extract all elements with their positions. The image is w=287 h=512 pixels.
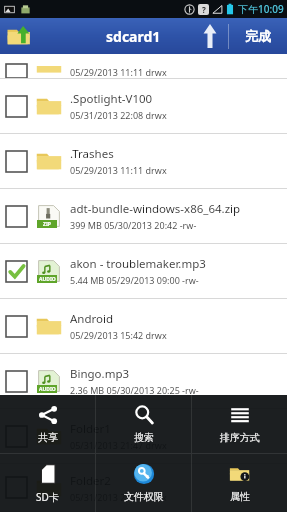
staticText: 共享 [38, 431, 58, 444]
staticText: 05/31/2013 21:47 drwx [70, 491, 167, 503]
button[interactable]: 属性 [229, 454, 251, 512]
staticText: .Trashes [70, 146, 114, 162]
staticText: Bingo.mp3 [70, 366, 130, 382]
button[interactable] [6, 371, 27, 392]
button[interactable]: 搜索 [133, 395, 155, 453]
staticText: ? [202, 4, 206, 15]
staticText: .Spotlight-V100 [70, 91, 153, 107]
staticText: Folder2 [70, 473, 111, 489]
staticText: 5.44 MB 05/29/2013 09:00 -rw- [70, 274, 199, 286]
staticText: 完成 [245, 28, 271, 44]
button[interactable]: Folder2 [0, 464, 287, 512]
staticText: AUDIO [39, 276, 56, 283]
staticText: 05/29/2013 11:11 drwx [70, 66, 167, 78]
button[interactable] [6, 426, 27, 447]
staticText: 下午10:09 [238, 2, 284, 16]
staticText: 属性 [230, 490, 250, 503]
staticText: 05/31/2013 22:08 drwx [70, 109, 167, 121]
button[interactable]: .Spotlight-V100 [0, 79, 287, 134]
staticText: akon - troublemaker.mp3 [70, 256, 206, 272]
button[interactable] [6, 316, 27, 337]
staticText: 05/29/2013 15:42 drwx [70, 329, 167, 341]
button[interactable]: Up one level [4, 20, 36, 52]
button[interactable]: Android [0, 299, 287, 354]
button[interactable] [6, 206, 27, 227]
button[interactable] [6, 96, 27, 117]
staticText: 05/31/2013 21:47 drwx [70, 439, 167, 451]
button[interactable]: Folder1 [0, 409, 287, 464]
button[interactable]: SD卡 [36, 454, 59, 512]
staticText: adt-bundle-windows-x86_64.zip [70, 201, 241, 217]
staticText: 399 MB 05/30/2013 20:42 -rw- [70, 219, 197, 231]
button[interactable]: 05/29/2013 11:11 drwx [0, 54, 287, 79]
staticText: 搜索 [134, 431, 154, 444]
staticText: AUDIO [39, 386, 56, 393]
button[interactable]: .Trashes [0, 134, 287, 189]
button[interactable]: ZIP [0, 189, 287, 244]
button[interactable]: 排序方式 [220, 395, 260, 453]
staticText: 排序方式 [220, 431, 260, 444]
staticText: Android [70, 311, 114, 327]
button[interactable]: Go up [192, 18, 228, 54]
button[interactable] [6, 261, 27, 282]
staticText: sdcard1 [106, 27, 161, 46]
button[interactable]: 完成 [229, 18, 287, 54]
button[interactable]: 文件权限 [124, 454, 164, 512]
button[interactable]: 共享 [37, 395, 59, 453]
staticText: SD卡 [36, 490, 59, 504]
staticText: 文件权限 [124, 490, 164, 503]
staticText: 05/29/2013 11:11 drwx [70, 164, 167, 176]
button[interactable] [6, 477, 27, 498]
staticText: Folder1 [70, 421, 111, 437]
staticText: 2.36 MB 05/30/2013 20:25 -rw- [70, 384, 199, 396]
button[interactable]: AUDIO [0, 354, 287, 409]
button[interactable] [6, 151, 27, 172]
staticText: ZIP [43, 221, 51, 228]
button[interactable]: AUDIO [0, 244, 287, 299]
